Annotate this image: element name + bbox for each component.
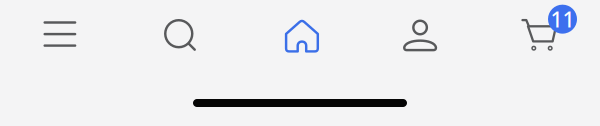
button[interactable]: Search — [120, 0, 240, 70]
staticText: 11 — [550, 5, 574, 33]
button[interactable]: Cart, 11 items — [480, 0, 600, 70]
button[interactable]: Home — [240, 0, 360, 70]
button[interactable]: Menu — [0, 0, 120, 70]
button[interactable]: Account — [360, 0, 480, 70]
